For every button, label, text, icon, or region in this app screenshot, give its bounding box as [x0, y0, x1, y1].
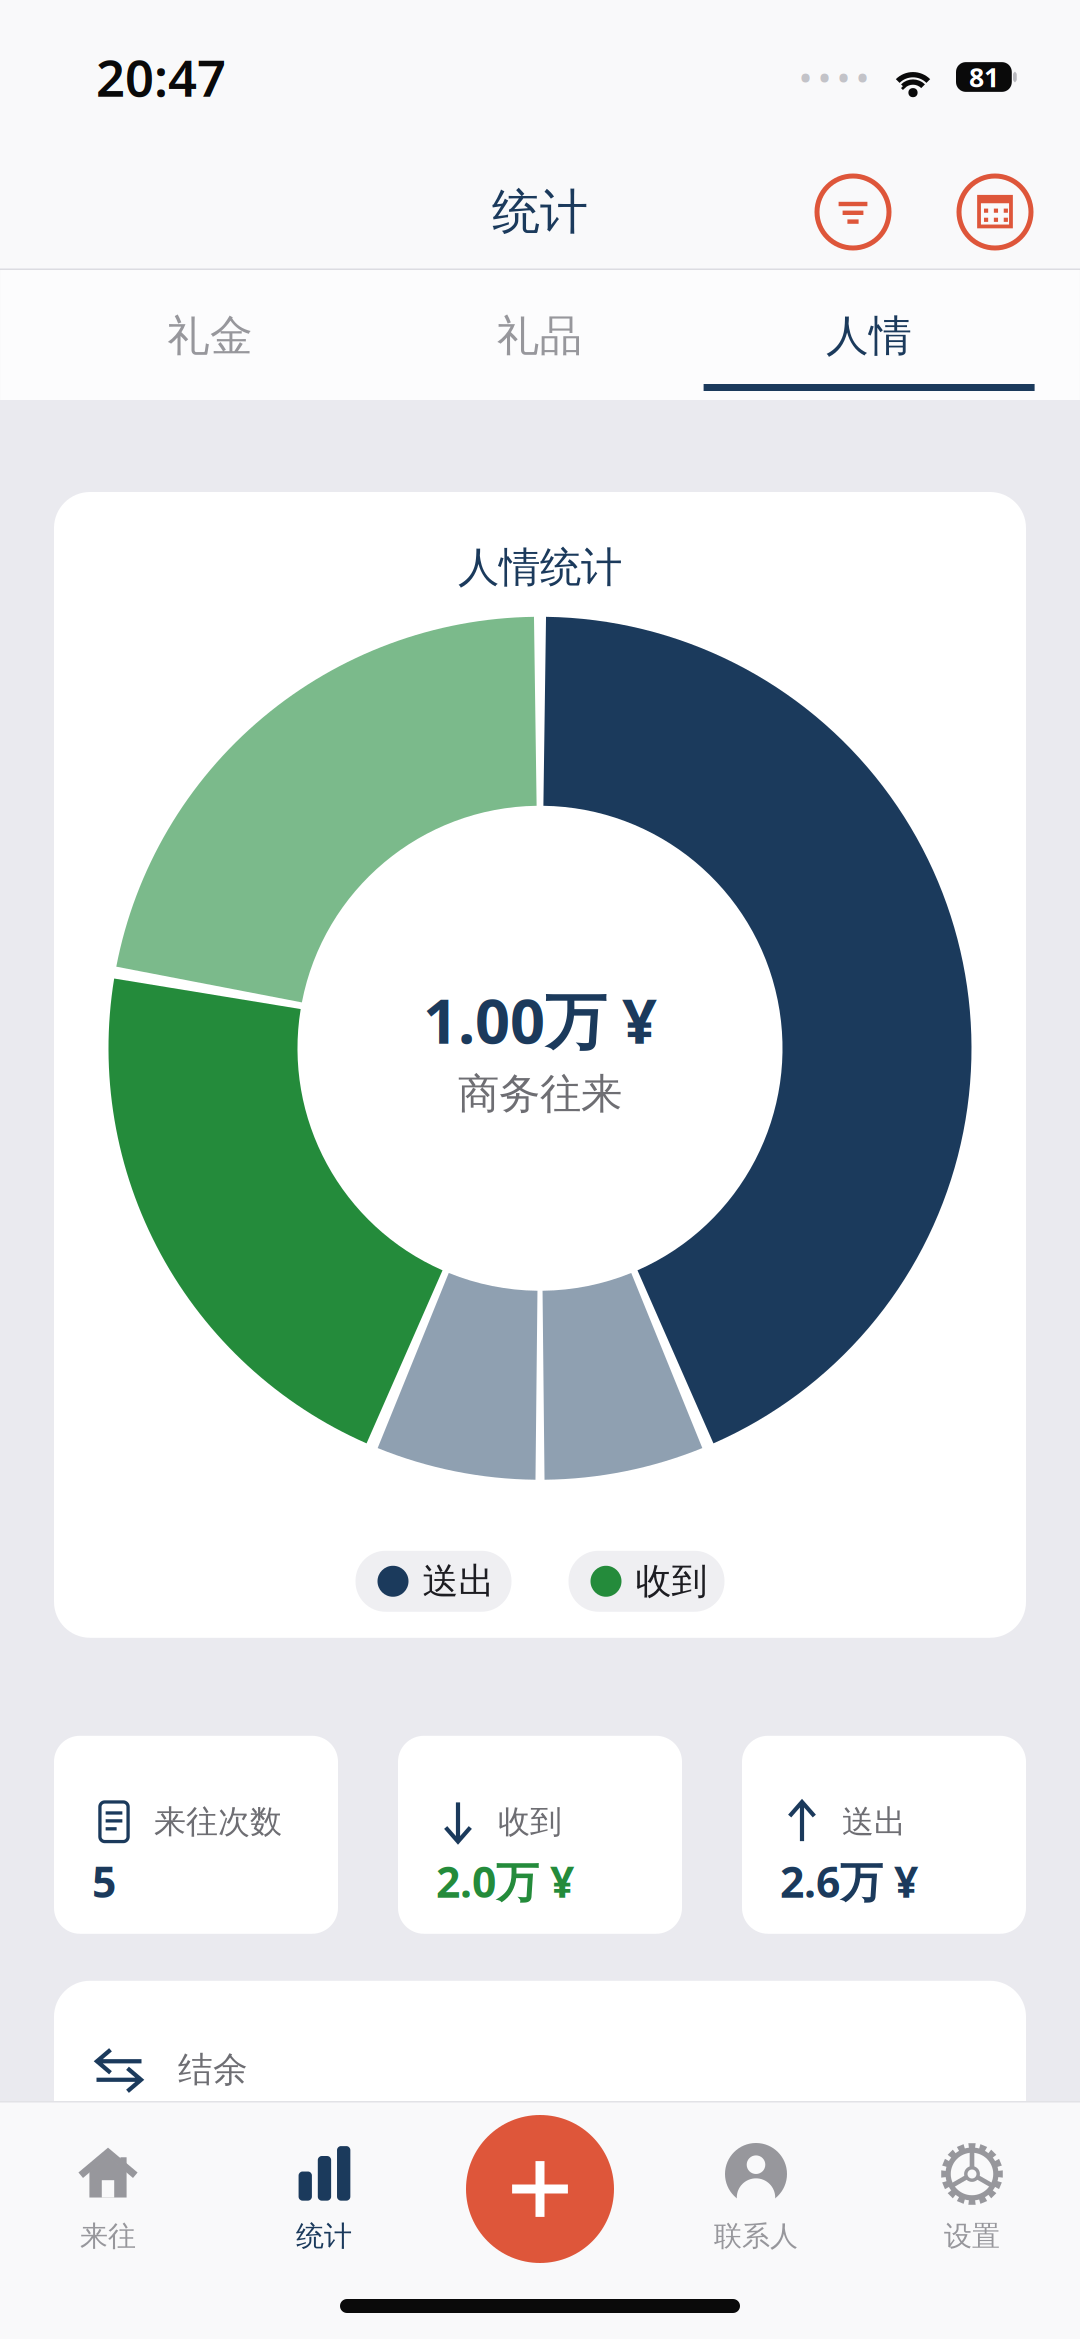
staticText: 送出	[422, 1559, 494, 1603]
button[interactable]: 人情	[704, 270, 1034, 400]
staticText: 2.0万 ¥	[436, 1853, 574, 1909]
staticText: 送出	[842, 1802, 906, 1841]
staticText: 20:47	[96, 43, 226, 111]
staticText: 统计	[296, 2219, 352, 2253]
staticText: 来往次数	[154, 1802, 282, 1841]
button[interactable]: 来往次数	[54, 1736, 338, 1934]
staticText: 收到	[498, 1802, 562, 1841]
staticText: 人情	[826, 310, 912, 362]
button[interactable]: 联系人	[648, 2125, 864, 2315]
button[interactable]: 新增	[466, 2115, 614, 2263]
staticText: 礼金	[167, 310, 253, 362]
button[interactable]: 礼品	[375, 270, 704, 400]
staticText: 收到	[635, 1559, 707, 1603]
staticText: 81	[969, 59, 999, 95]
staticText: 来往	[80, 2219, 136, 2253]
staticText: 结余	[178, 2048, 248, 2091]
staticText: 5	[92, 1853, 116, 1909]
button[interactable]: 筛选	[810, 169, 896, 255]
staticText: 联系人	[714, 2219, 798, 2253]
staticText: 统计	[492, 182, 588, 241]
button[interactable]: 收到	[398, 1736, 682, 1934]
staticText: 1.00万 ¥	[423, 979, 657, 1061]
staticText: 2.6万 ¥	[780, 1853, 918, 1909]
staticText: • • • •	[800, 57, 868, 96]
button[interactable]: 送出	[742, 1736, 1026, 1934]
staticText: 设置	[944, 2219, 1000, 2253]
button[interactable]: 来往	[0, 2125, 216, 2315]
button[interactable]: 礼金	[45, 270, 375, 400]
button[interactable]: 结余	[54, 1981, 1026, 2181]
staticText: 礼品	[496, 310, 582, 362]
button[interactable]: 统计	[216, 2125, 432, 2315]
staticText: 商务往来	[458, 1069, 622, 1119]
staticText: 人情统计	[458, 542, 622, 593]
button[interactable]: 设置	[864, 2125, 1080, 2315]
button[interactable]: 日历	[952, 169, 1038, 255]
